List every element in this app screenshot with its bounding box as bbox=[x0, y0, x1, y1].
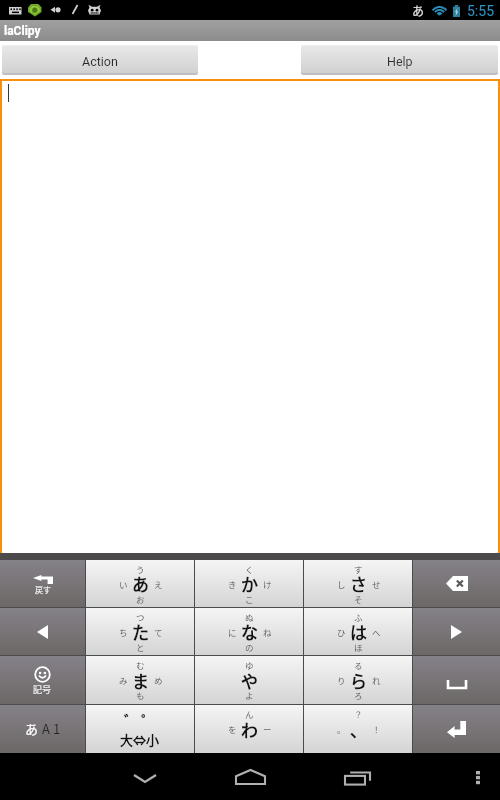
staticText: や bbox=[241, 668, 258, 693]
staticText: け bbox=[263, 578, 272, 590]
staticText: て bbox=[154, 626, 163, 638]
button[interactable]: Enter bbox=[413, 705, 500, 753]
staticText: ん bbox=[245, 708, 254, 720]
staticText: か bbox=[241, 571, 258, 596]
staticText: と bbox=[136, 641, 145, 653]
staticText: ろ bbox=[354, 689, 363, 701]
staticText: 戻す bbox=[35, 584, 51, 596]
staticText: 5:55 bbox=[467, 3, 494, 19]
staticText: 。 bbox=[337, 723, 346, 735]
staticText: も bbox=[136, 689, 145, 701]
staticText: ー bbox=[263, 723, 272, 735]
staticText: し bbox=[337, 578, 346, 590]
staticText: 1 bbox=[53, 719, 61, 738]
staticText: さ bbox=[350, 571, 367, 596]
button[interactable]: ん bbox=[195, 705, 303, 753]
staticText: つ bbox=[136, 611, 145, 623]
staticText: よ bbox=[245, 689, 254, 701]
staticText: す bbox=[354, 563, 363, 575]
staticText: A bbox=[42, 719, 50, 738]
staticText: る bbox=[354, 659, 363, 671]
staticText: Action bbox=[82, 54, 118, 69]
staticText: ま bbox=[132, 668, 149, 693]
button[interactable]: Backspace bbox=[413, 560, 500, 607]
button[interactable]: る bbox=[304, 656, 412, 704]
staticText: ね bbox=[263, 626, 272, 638]
staticText: あ bbox=[25, 719, 39, 738]
staticText: り bbox=[337, 674, 346, 686]
staticText: お bbox=[136, 593, 145, 605]
staticText: ゆ bbox=[245, 659, 254, 671]
button[interactable]: ゆ bbox=[195, 656, 303, 704]
button[interactable]: Space bbox=[413, 656, 500, 704]
staticText: を bbox=[228, 723, 237, 735]
button[interactable]: く bbox=[195, 560, 303, 607]
staticText: む bbox=[136, 659, 145, 671]
staticText: く bbox=[245, 563, 254, 575]
staticText: ぬ bbox=[245, 611, 254, 623]
button[interactable]: ふ bbox=[304, 608, 412, 655]
staticText: み bbox=[119, 674, 128, 686]
button[interactable]: Recent apps bbox=[322, 753, 392, 800]
button[interactable]: Action bbox=[2, 45, 198, 73]
staticText: な bbox=[241, 619, 258, 644]
staticText: の bbox=[245, 641, 254, 653]
staticText: れ bbox=[372, 674, 381, 686]
button[interactable]: Cursor left bbox=[0, 608, 85, 655]
staticText: あ bbox=[412, 2, 425, 19]
button[interactable]: む bbox=[86, 656, 194, 704]
button[interactable]: ？ bbox=[304, 705, 412, 753]
button[interactable]: Home bbox=[215, 753, 285, 800]
staticText: ち bbox=[119, 626, 128, 638]
staticText: は bbox=[350, 619, 367, 644]
staticText: ひ bbox=[337, 626, 346, 638]
staticText: へ bbox=[372, 626, 381, 638]
button[interactable]: More options bbox=[458, 753, 498, 800]
staticText: わ bbox=[241, 717, 258, 742]
staticText: た bbox=[132, 619, 149, 644]
button[interactable]: つ bbox=[86, 608, 194, 655]
button[interactable]: ぬ bbox=[195, 608, 303, 655]
staticText: に bbox=[228, 626, 237, 638]
staticText: ふ bbox=[354, 611, 363, 623]
staticText: 、 bbox=[350, 717, 367, 742]
staticText: え bbox=[154, 578, 163, 590]
staticText: あ bbox=[132, 571, 149, 596]
staticText: ？ bbox=[354, 708, 363, 720]
button[interactable]: ゛ ゜ bbox=[86, 705, 194, 753]
staticText: ほ bbox=[354, 641, 363, 653]
button[interactable]: Help bbox=[301, 45, 498, 73]
staticText: ゛ ゜ bbox=[124, 710, 156, 730]
staticText: 記号 bbox=[33, 683, 52, 696]
staticText: い bbox=[119, 578, 128, 590]
button[interactable]: Undo bbox=[0, 560, 85, 607]
button[interactable]: Switch input mode bbox=[0, 705, 85, 753]
staticText: こ bbox=[245, 593, 254, 605]
button[interactable]: Symbols bbox=[0, 656, 85, 704]
staticText: う bbox=[136, 563, 145, 575]
staticText: 大⇔小 bbox=[120, 730, 160, 749]
staticText: laClipy bbox=[4, 24, 41, 38]
staticText: め bbox=[154, 674, 163, 686]
staticText: せ bbox=[372, 578, 381, 590]
staticText: Help bbox=[387, 54, 413, 69]
staticText: そ bbox=[354, 593, 363, 605]
button[interactable]: す bbox=[304, 560, 412, 607]
staticText: ら bbox=[350, 668, 367, 693]
button[interactable]: Hide keyboard bbox=[110, 753, 180, 800]
button[interactable]: Cursor right bbox=[413, 608, 500, 655]
button[interactable]: う bbox=[86, 560, 194, 607]
staticText: き bbox=[228, 578, 237, 590]
staticText: ！ bbox=[372, 723, 381, 735]
